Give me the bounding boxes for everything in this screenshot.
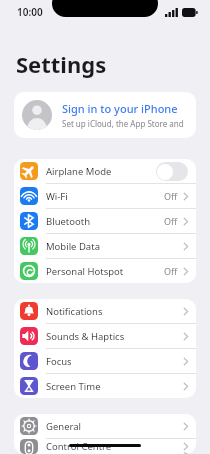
button[interactable]: Sounds & Haptics	[14, 324, 196, 349]
button[interactable]: Notifications	[14, 299, 196, 324]
staticText: Off	[164, 215, 178, 227]
button[interactable]: Mobile Data	[14, 234, 196, 259]
staticText: Focus	[46, 355, 183, 368]
staticText: Airplane Mode	[46, 165, 156, 178]
staticText: Notifications	[46, 305, 183, 318]
button[interactable]: Personal Hotspot	[14, 259, 196, 283]
button[interactable]: Focus	[14, 349, 196, 374]
staticText: 10:00	[17, 5, 43, 19]
staticText: Wi-Fi	[46, 190, 164, 203]
staticText: General	[46, 420, 183, 433]
button[interactable]: Wi-Fi	[14, 184, 196, 209]
button[interactable]: Airplane Mode toggle, off	[156, 162, 188, 181]
button[interactable]: General	[14, 414, 196, 439]
staticText: Off	[164, 190, 178, 202]
button[interactable]: Sign in to your iPhone	[14, 92, 196, 138]
staticText: Control Centre	[46, 440, 183, 453]
staticText: Personal Hotspot	[46, 265, 164, 278]
staticText: Screen Time	[46, 380, 183, 393]
staticText: Sounds & Haptics	[46, 330, 183, 343]
button[interactable]: Screen Time	[14, 374, 196, 398]
staticText: Set up iCloud, the App Store and more.	[62, 118, 188, 129]
staticText: Mobile Data	[46, 240, 183, 253]
button[interactable]: Bluetooth	[14, 209, 196, 234]
staticText: Settings	[16, 49, 107, 79]
button[interactable]: Airplane Mode	[14, 159, 196, 184]
staticText: Off	[164, 265, 178, 277]
staticText: Sign in to your iPhone	[62, 101, 178, 116]
button[interactable]: Control Centre	[14, 439, 196, 454]
staticText: Bluetooth	[46, 215, 164, 228]
